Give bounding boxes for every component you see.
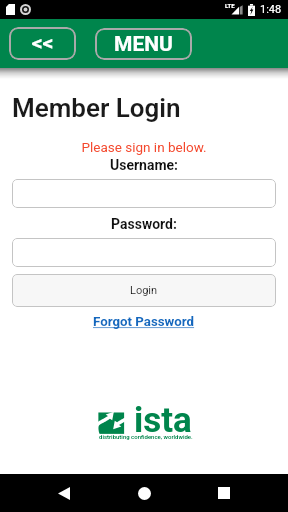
- staticText: ista: [134, 400, 192, 441]
- staticText: Member Login: [12, 93, 181, 123]
- staticText: distributing confidence, worldwide.: [99, 433, 199, 440]
- button[interactable]: Back: [9, 27, 76, 60]
- staticText: Please sign in below.: [0, 139, 288, 155]
- button[interactable]: Forgot Password: [93, 314, 195, 330]
- button[interactable]: Back: [48, 477, 80, 509]
- staticText: <<: [32, 31, 54, 56]
- staticText: 1:48: [260, 3, 282, 16]
- button[interactable]: Recent apps: [208, 477, 240, 509]
- button[interactable]: Home: [128, 477, 160, 509]
- button[interactable]: MENU: [95, 28, 192, 60]
- staticText: Username:: [0, 157, 288, 173]
- button[interactable]: [12, 179, 276, 208]
- staticText: LTE: [225, 2, 235, 9]
- button[interactable]: [12, 238, 276, 267]
- button[interactable]: Login: [12, 274, 276, 307]
- staticText: Login: [130, 284, 158, 297]
- staticText: Password:: [0, 216, 288, 232]
- staticText: MENU: [114, 32, 173, 57]
